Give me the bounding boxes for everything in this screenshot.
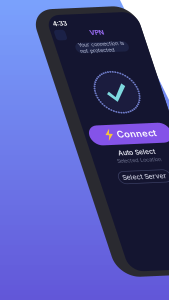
staticText: Your connection is not protected [23, 29, 69, 42]
button[interactable]: Connect [4, 116, 86, 137]
staticText: VPN [38, 16, 52, 24]
staticText: Connect [32, 121, 71, 133]
